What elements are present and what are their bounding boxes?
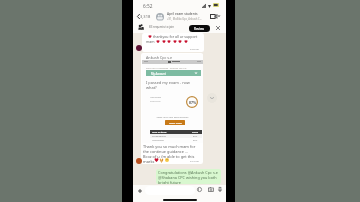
button[interactable]: Ankush Cpc s.e — [141, 53, 203, 164]
button[interactable]: Video call — [208, 12, 221, 21]
button[interactable]: Dismiss — [214, 24, 221, 31]
staticText: Area of Study — [152, 131, 167, 134]
staticText: Score — [192, 131, 198, 134]
staticText: VIEW NOW — [169, 121, 182, 124]
staticText: 89% — [193, 135, 198, 138]
staticText: Score 87% — [150, 100, 161, 103]
button[interactable]: Congratulations @Ankush Cpc s.e @Shabana… — [156, 169, 221, 184]
staticText: Assessment — [152, 139, 164, 142]
staticText: Review — [194, 27, 205, 31]
button[interactable]: Camera — [207, 186, 214, 193]
staticText: Congratulations @Ankush Cpc s.e @Shabana… — [158, 170, 218, 184]
staticText: 83 requests to join — [149, 25, 175, 29]
button[interactable]: April exam students — [167, 12, 212, 21]
staticText: +91, Mallika Gpc, Ankush C... — [167, 17, 202, 21]
staticText: Thank you so much mam for the continue g… — [143, 144, 196, 164]
staticText: April exam students — [167, 12, 198, 16]
staticText: mam — [146, 39, 155, 44]
button[interactable]: VIEW NOW — [165, 120, 185, 125]
button[interactable]: Attach — [135, 186, 144, 195]
staticText: Fundamentals — [152, 135, 167, 138]
staticText: 6:34 am — [190, 159, 199, 162]
staticText: My Account — [151, 72, 166, 76]
staticText: 3,318 — [140, 14, 151, 19]
staticText: sent you a message · ankush cpc s.e — [146, 66, 187, 69]
staticText: Ankush Cpc s.e — [146, 55, 173, 60]
button[interactable]: Review — [189, 25, 210, 32]
staticText: thankyou for all ur support — [153, 34, 198, 39]
staticText: 85% — [193, 139, 198, 142]
staticText: Your Exam — [150, 96, 161, 99]
staticText: View Your Skill Benchmarks — [142, 115, 203, 118]
button[interactable]: Voice message — [216, 186, 223, 193]
staticText: I passed my exam - now what? — [146, 80, 190, 90]
staticText: 6:52 — [143, 3, 153, 10]
staticText: 6:08 am — [190, 47, 199, 50]
staticText: 87% — [189, 100, 196, 105]
button[interactable]: thankyou for all ur support — [142, 33, 204, 52]
button[interactable]: Stickers — [196, 186, 203, 193]
button[interactable]: Back — [134, 12, 142, 20]
button[interactable]: Scroll to bottom — [207, 93, 217, 103]
